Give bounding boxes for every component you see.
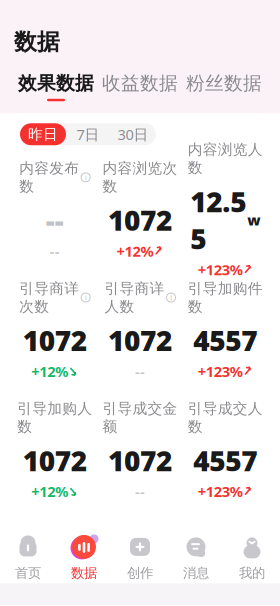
staticText: +12% [116,241,153,261]
staticText: 30日 [117,124,148,144]
staticText: 引导加购件数 [188,279,263,315]
button[interactable]: 收益数据 [98,70,182,103]
staticText: +12% [31,482,68,501]
staticText: -- [50,241,60,261]
staticText: w [247,210,260,230]
button[interactable]: 数据 [56,530,112,583]
staticText: 1072 [108,201,172,238]
staticText: -- [46,201,64,238]
staticText: 消息 [183,565,209,581]
staticText: i [85,172,87,183]
staticText: 7日 [76,124,99,144]
button[interactable]: 昨日 [20,123,66,145]
staticText: 4557 [193,321,257,359]
staticText: i [85,292,87,303]
staticText: 内容发布数 [19,159,79,195]
staticText: 1072 [23,321,87,359]
button[interactable]: 我的 [224,530,280,583]
button[interactable]: 创作 [112,530,168,583]
staticText: 引导商详次数 [19,279,79,315]
staticText: 创作 [127,565,153,581]
staticText: 12.55 [190,183,246,257]
staticText: 引导商详人数 [104,279,164,315]
button[interactable]: 效果数据 [14,70,98,103]
staticText: 效果数据 [18,72,94,95]
staticText: 内容浏览人数 [188,141,263,177]
staticText: +123% [198,260,243,279]
staticText: i [170,292,172,303]
button[interactable]: 首页 [0,530,56,583]
staticText: 内容浏览次数 [102,159,177,195]
button[interactable]: 30日 [110,123,156,145]
staticText: 引导成交人数 [188,400,263,436]
staticText: 1072 [108,321,172,359]
button[interactable]: 粉丝数据 [182,70,266,103]
staticText: 收益数据 [102,72,178,95]
staticText: 我的 [239,565,265,581]
staticText: 昨日 [28,125,58,143]
staticText: 数据 [14,28,60,56]
staticText: -- [135,361,145,381]
button[interactable]: 消息 [168,530,224,583]
staticText: +12% [31,361,68,381]
button[interactable]: 7日 [66,123,110,145]
staticText: 引导成交金额 [102,400,177,436]
staticText: 1072 [23,442,87,479]
staticText: -- [135,482,145,501]
staticText: 数据 [71,565,97,581]
staticText: +123% [198,361,243,381]
staticText: 1072 [108,442,172,479]
staticText: 粉丝数据 [186,72,262,95]
staticText: 4557 [193,442,257,479]
staticText: 引导加购人数 [17,400,92,436]
staticText: 首页 [15,565,41,581]
staticText: +123% [198,482,243,501]
